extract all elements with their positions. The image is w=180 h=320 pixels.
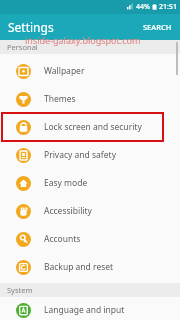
staticText: System — [7, 285, 33, 295]
staticText: Settings — [8, 19, 54, 35]
staticText: Privacy and safety — [44, 149, 116, 161]
staticText: Wallpaper — [44, 65, 85, 77]
staticText: Language and input — [44, 304, 125, 316]
button[interactable]: Themes — [0, 85, 180, 113]
staticText: Backup and reset — [44, 261, 114, 273]
staticText: Accounts — [44, 233, 81, 245]
staticText: inside-galaxy.blogspot.com — [25, 34, 141, 46]
staticText: Themes — [44, 93, 76, 105]
staticText: Easy mode — [44, 177, 88, 189]
button[interactable]: Wallpaper — [0, 57, 180, 85]
button[interactable]: Privacy and safety — [0, 141, 180, 169]
button[interactable]: Accessibility — [0, 197, 180, 225]
staticText: SEARCH — [143, 22, 172, 32]
staticText: Personal — [7, 42, 38, 52]
staticText: 44% — [136, 2, 150, 12]
button[interactable]: SEARCH — [135, 18, 180, 36]
button[interactable]: Backup and reset — [0, 253, 180, 281]
button[interactable]: Accounts — [0, 225, 180, 253]
staticText: Accessibility — [44, 205, 92, 217]
staticText: 21:51 — [159, 2, 177, 12]
button[interactable]: Easy mode — [0, 169, 180, 197]
button[interactable]: Language and input — [0, 300, 180, 320]
staticText: Lock screen and security — [44, 121, 142, 133]
button[interactable]: Lock screen and security — [0, 113, 180, 141]
